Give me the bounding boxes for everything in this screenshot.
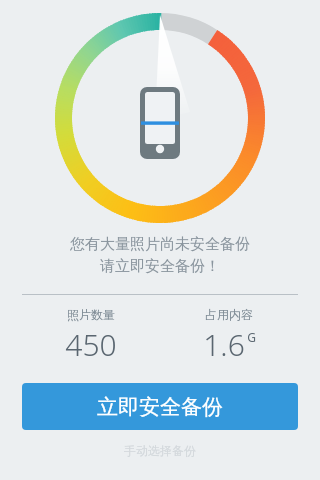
button[interactable]: 手动选择备份 — [114, 440, 206, 461]
staticText: 您有大量照片尚未安全备份 — [70, 235, 250, 254]
staticText: 请立即安全备份！ — [100, 257, 220, 276]
staticText: 手动选择备份 — [124, 443, 196, 458]
staticText: 照片数量 — [67, 307, 115, 322]
staticText: G — [247, 329, 256, 345]
staticText: 1.6 — [203, 324, 245, 365]
staticText: 占用内容 — [205, 307, 253, 322]
staticText: 立即安全备份 — [97, 394, 223, 420]
button[interactable]: 立即安全备份 — [22, 383, 298, 430]
staticText: 450 — [65, 324, 117, 365]
